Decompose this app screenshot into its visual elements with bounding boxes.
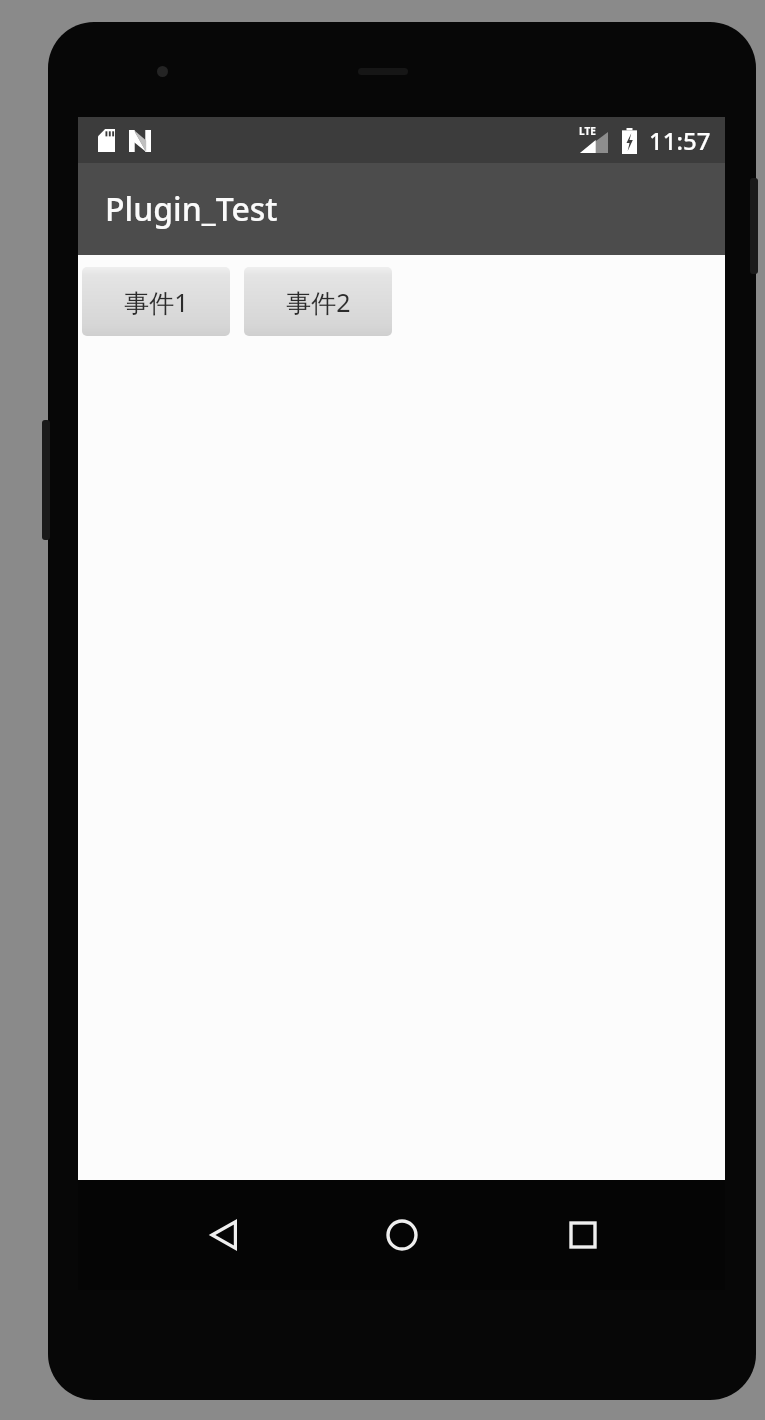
staticText: Plugin_Test xyxy=(105,187,278,231)
staticText: 11:57 xyxy=(649,124,711,157)
button[interactable]: Back xyxy=(186,1197,262,1273)
button[interactable]: 事件1 xyxy=(82,267,230,336)
staticText: 事件2 xyxy=(286,285,351,319)
button[interactable]: Home xyxy=(364,1197,440,1273)
staticText: 事件1 xyxy=(124,285,189,319)
button[interactable]: Recent apps xyxy=(545,1197,621,1273)
button[interactable]: 事件2 xyxy=(244,267,392,336)
staticText: LTE xyxy=(579,124,596,138)
